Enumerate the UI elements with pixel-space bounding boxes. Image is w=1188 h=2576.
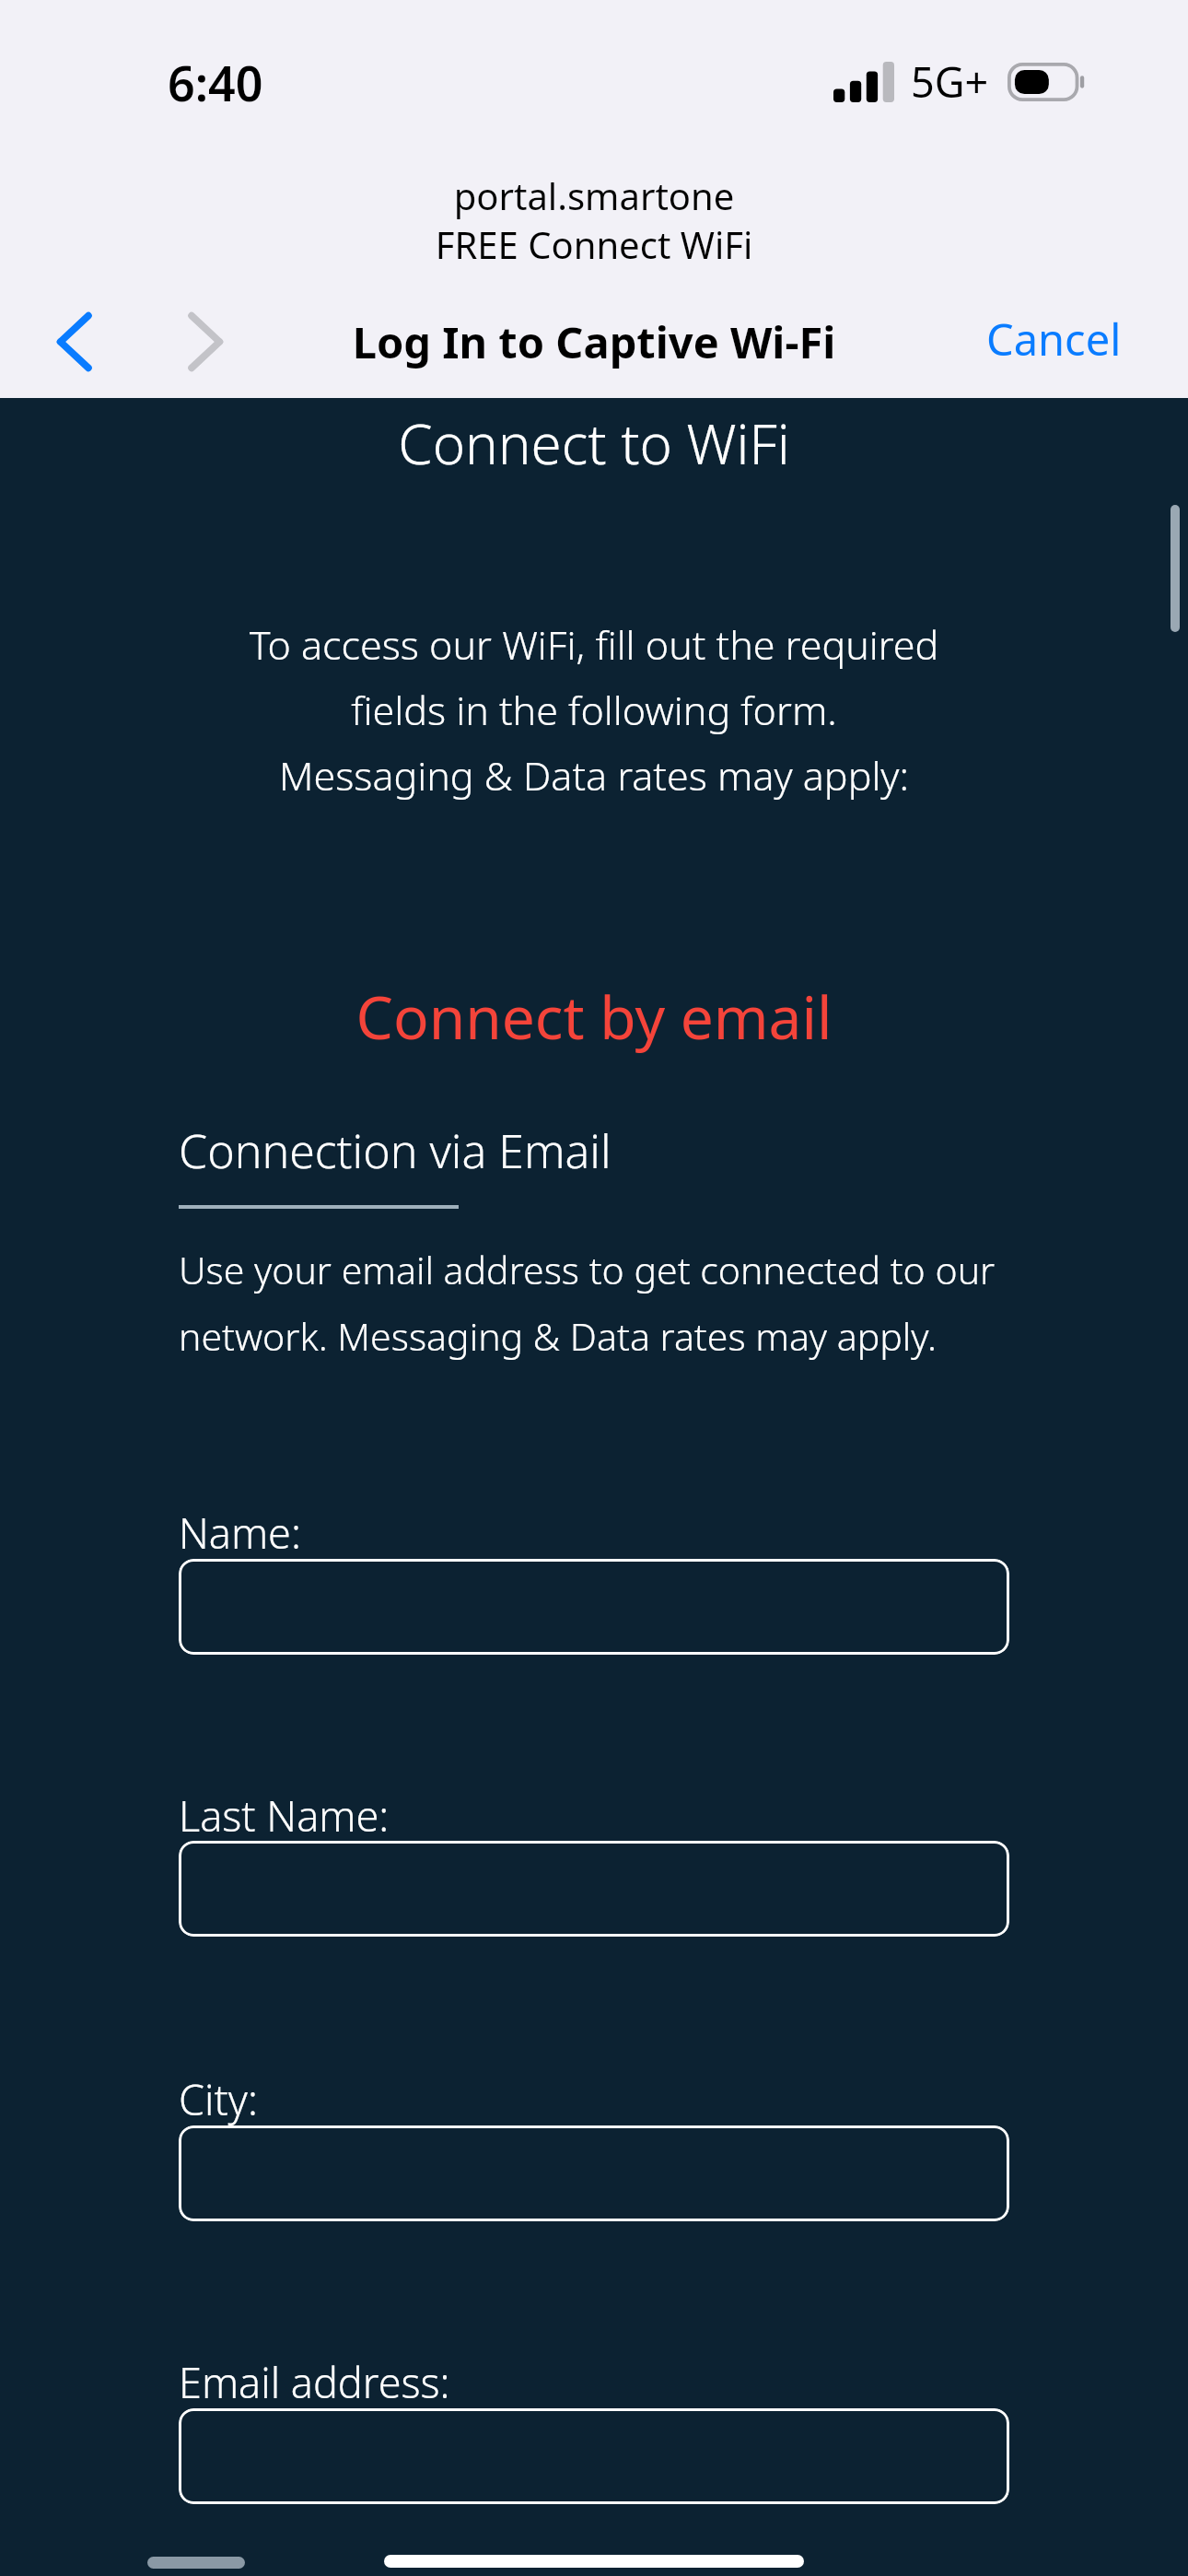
button[interactable]: Cancel — [964, 287, 1144, 391]
staticText: City: — [179, 2071, 258, 2127]
staticText: Log In to Captive Wi-Fi — [0, 312, 1188, 371]
staticText: Cancel — [986, 310, 1122, 369]
staticText: Connect by email — [0, 977, 1188, 1057]
staticText: Email address: — [179, 2354, 450, 2410]
staticText: portal.smartone — [0, 170, 1188, 220]
staticText: FREE Connect WiFi — [0, 219, 1188, 269]
button[interactable]: Name — [179, 1559, 1009, 1655]
staticText: Connection via Email — [179, 1119, 611, 1182]
staticText: To access our WiFi, fill out the require… — [249, 617, 939, 802]
staticText: 6:40 — [168, 50, 263, 115]
button[interactable]: City — [179, 2125, 1009, 2221]
staticText: Use your email address to get connected … — [179, 1244, 1017, 1362]
staticText: Last Name: — [179, 1787, 390, 1844]
staticText: Name: — [179, 1505, 301, 1561]
button[interactable]: Email address — [179, 2408, 1009, 2504]
staticText: Connect to WiFi — [0, 405, 1188, 481]
button[interactable]: Forward — [157, 299, 256, 385]
staticText: 5G+ — [911, 53, 989, 110]
button[interactable]: Back — [24, 299, 123, 385]
button[interactable]: Last Name — [179, 1841, 1009, 1937]
